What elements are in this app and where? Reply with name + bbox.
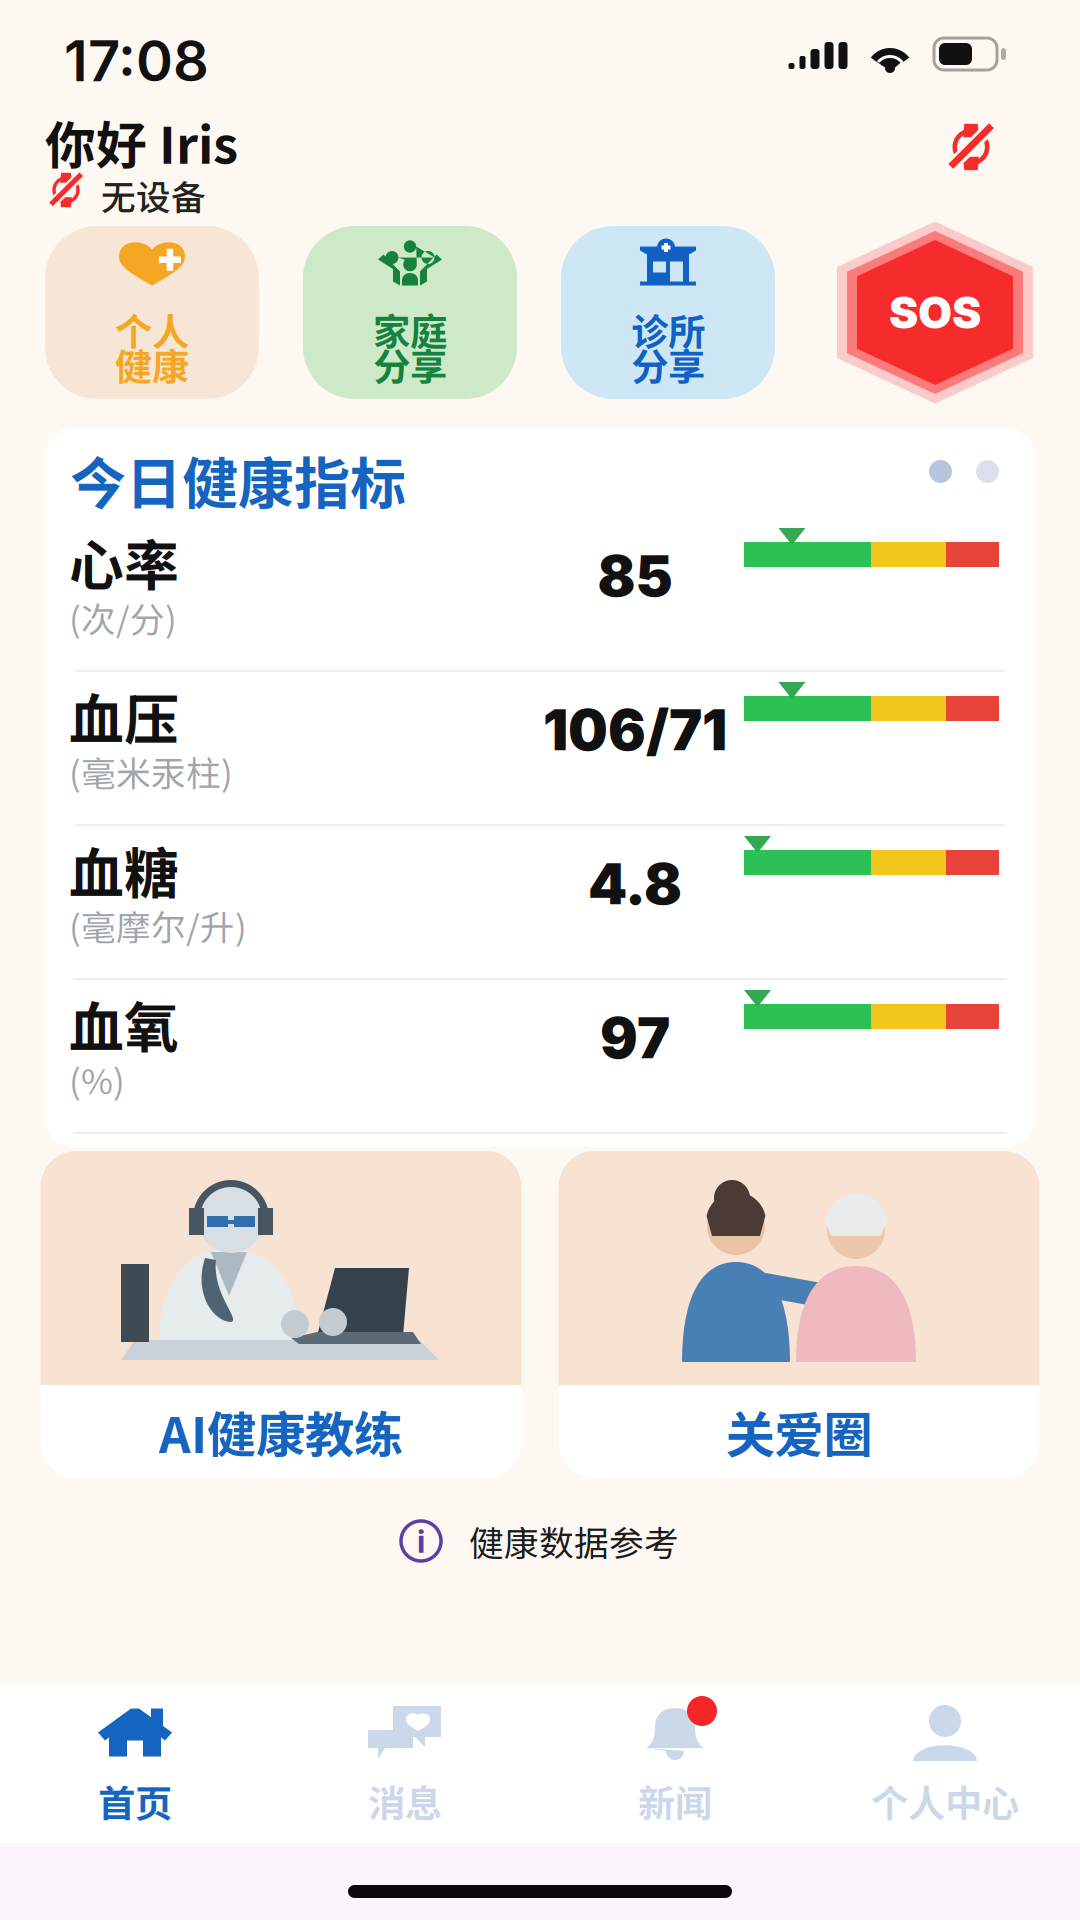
staticText: 血氧 [69,984,179,1063]
staticText: 心率 [69,522,179,601]
button[interactable]: i [401,1506,679,1576]
button[interactable]: 个人中心 [810,1683,1080,1843]
button[interactable]: 设备连接状态 [944,120,998,174]
staticText: 血压 [69,676,179,755]
staticText: 个人 [115,302,189,357]
button[interactable]: AI健康教练 [40,1151,521,1478]
staticText: (次/分) [69,592,177,642]
button[interactable]: 诊所 [561,226,775,399]
staticText: 85 [597,542,672,610]
staticText: 无设备 [101,170,206,220]
staticText: 新闻 [638,1774,712,1828]
staticText: 97 [600,1004,670,1072]
staticText: 血糖 [69,830,179,909]
button[interactable]: 消息 [270,1683,540,1843]
staticText: 17:08 [64,27,209,95]
button[interactable]: 新闻 [540,1683,810,1843]
staticText: 关爱圈 [725,1396,872,1467]
staticText: 首页 [98,1774,172,1828]
button[interactable]: 家庭 [303,226,517,399]
staticText: 106/71 [543,696,727,764]
staticText: AI健康教练 [159,1396,403,1467]
staticText: (毫米汞柱) [69,746,233,796]
staticText: 家庭 [373,302,447,357]
button[interactable]: 关爱圈 [558,1151,1039,1478]
staticText: SOS [889,286,981,339]
staticText: 诊所 [631,302,705,357]
button[interactable]: 首页 [0,1683,270,1843]
staticText: 分享 [631,337,705,392]
staticText: (%) [69,1054,125,1104]
staticText: 你好 Iris [45,105,238,178]
button[interactable]: 个人 [45,226,259,399]
staticText: 消息 [368,1774,442,1828]
staticText: i [417,1522,425,1560]
staticText: 个人中心 [871,1774,1019,1828]
staticText: 今日健康指标 [70,439,406,520]
button[interactable]: SOS [835,219,1035,405]
staticText: 4.8 [588,850,682,918]
staticText: (毫摩尔/升) [69,900,247,950]
staticText: 健康数据参考 [469,1516,679,1566]
staticText: 健康 [115,337,189,392]
staticText: 分享 [373,337,447,392]
